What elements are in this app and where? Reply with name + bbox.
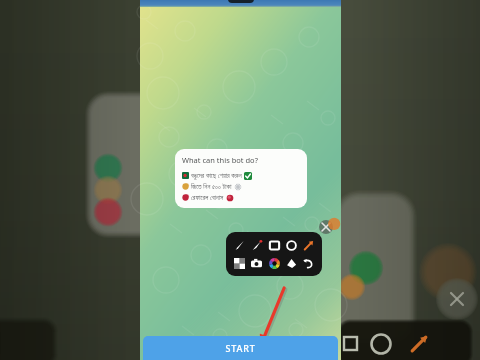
button[interactable]: Close markup — [319, 220, 333, 234]
button[interactable]: Undo — [301, 256, 316, 271]
staticText: What can this bot do? — [182, 155, 258, 165]
button[interactable]: Rectangle — [267, 238, 282, 253]
button[interactable]: Color — [267, 256, 282, 271]
staticText: বন্ধুদের কাছে শেয়ার করুন — [191, 171, 242, 180]
button[interactable]: Pen — [232, 238, 247, 253]
button[interactable]: What can this bot do? — [175, 149, 307, 208]
button[interactable]: Highlighter — [249, 238, 264, 253]
button[interactable]: Ellipse — [284, 238, 299, 253]
button[interactable]: Camera — [249, 256, 264, 271]
staticText: START — [225, 342, 256, 354]
staticText: রেফারেল বোনাস — [191, 193, 224, 202]
staticText: জিতে নিন ৫০০ টাকা — [191, 182, 232, 191]
button[interactable]: Eraser — [284, 256, 299, 271]
button[interactable]: START — [143, 336, 338, 360]
button[interactable]: Mosaic — [232, 256, 247, 271]
button[interactable]: Arrow — [301, 238, 316, 253]
